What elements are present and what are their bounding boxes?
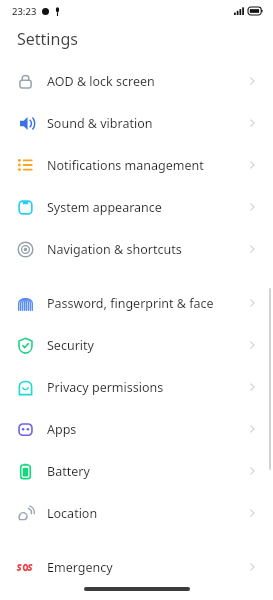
staticText: Location: [47, 505, 98, 522]
staticText: Privacy permissions: [47, 379, 164, 396]
button[interactable]: Security: [0, 324, 273, 366]
staticText: Navigation & shortcuts: [47, 241, 182, 258]
button[interactable]: Privacy permissions: [0, 366, 273, 408]
button[interactable]: Emergency: [0, 546, 273, 588]
staticText: Sound & vibration: [47, 115, 153, 132]
staticText: Notifications management: [47, 157, 204, 174]
button[interactable]: Notifications management: [0, 144, 273, 186]
button[interactable]: System appearance: [0, 186, 273, 228]
staticText: 23:23: [12, 5, 37, 18]
button[interactable]: AOD & lock screen: [0, 60, 273, 102]
button[interactable]: Apps: [0, 408, 273, 450]
staticText: Battery: [47, 463, 90, 480]
button[interactable]: Navigation & shortcuts: [0, 228, 273, 270]
button[interactable]: Sound & vibration: [0, 102, 273, 144]
staticText: Apps: [47, 421, 77, 438]
button[interactable]: Location: [0, 492, 273, 534]
button[interactable]: Password, fingerprint & face: [0, 282, 273, 324]
staticText: Security: [47, 337, 94, 354]
staticText: Password, fingerprint & face: [47, 295, 214, 312]
staticText: AOD & lock screen: [47, 73, 155, 90]
staticText: Emergency: [47, 559, 113, 576]
staticText: System appearance: [47, 199, 162, 216]
button[interactable]: Battery: [0, 450, 273, 492]
staticText: Settings: [17, 28, 78, 50]
